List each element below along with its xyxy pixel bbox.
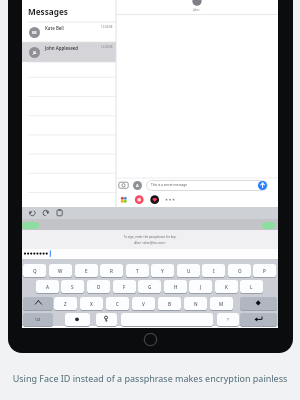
button[interactable]: [23, 297, 53, 310]
button[interactable]: W: [49, 264, 72, 277]
button[interactable]: U: [177, 264, 200, 277]
button[interactable]: F: [113, 280, 136, 293]
staticText: Messages: [28, 6, 68, 17]
staticText: H: [174, 284, 178, 290]
staticText: V: [142, 301, 145, 307]
button[interactable]: E: [75, 264, 98, 277]
staticText: This is a secret message: [151, 183, 187, 187]
staticText: Z: [64, 301, 67, 307]
staticText: John ›: [193, 8, 201, 12]
staticText: A: [46, 284, 50, 290]
button[interactable]: John ›: [182, 7, 212, 12]
staticText: John Appleseed: [45, 45, 79, 51]
button[interactable]: I: [202, 264, 225, 277]
staticText: L: [250, 284, 253, 290]
staticText: JA: [33, 50, 37, 55]
staticText: M: [219, 301, 224, 307]
button[interactable]: [240, 297, 277, 310]
button[interactable]: [258, 181, 267, 190]
staticText: U: [187, 268, 191, 274]
staticText: O: [238, 268, 242, 274]
staticText: X: [90, 301, 93, 307]
button[interactable]: A: [36, 280, 59, 293]
button[interactable]: O: [228, 264, 251, 277]
button[interactable]: B: [158, 297, 181, 310]
button[interactable]: Z: [54, 297, 77, 310]
staticText: R: [110, 268, 113, 274]
button[interactable]: Y: [151, 264, 174, 277]
button[interactable]: [262, 222, 275, 229]
staticText: Using Face ID instead of a passphrase ma…: [0, 372, 300, 384]
button[interactable]: D: [87, 280, 110, 293]
staticText: A: [136, 183, 139, 188]
button[interactable]: R: [100, 264, 123, 277]
button[interactable]: G: [138, 280, 161, 293]
staticText: 123: [35, 318, 41, 322]
button[interactable]: J: [189, 280, 212, 293]
button[interactable]: P: [253, 264, 276, 277]
staticText: P: [263, 268, 266, 274]
button[interactable]: 123: [23, 313, 53, 326]
button[interactable]: C: [106, 297, 129, 310]
staticText: D: [97, 284, 101, 290]
staticText: W: [58, 268, 63, 274]
button[interactable]: [96, 313, 117, 326]
button[interactable]: ?: [217, 313, 239, 326]
button[interactable]: T: [126, 264, 149, 277]
staticText: I: [213, 268, 215, 274]
staticText: Q: [33, 268, 37, 274]
button[interactable]: K: [215, 280, 238, 293]
staticText: Y: [161, 268, 164, 274]
staticText: F: [123, 284, 126, 290]
staticText: ?: [227, 317, 229, 322]
staticText: K: [225, 284, 228, 290]
staticText: To sign, enter the passphrase for key:: [22, 235, 278, 239]
button[interactable]: X: [80, 297, 103, 310]
button[interactable]: KB: [22, 22, 116, 42]
staticText: 12:34:08: [101, 45, 113, 49]
button[interactable]: This is a secret message: [146, 180, 268, 191]
button[interactable]: N: [184, 297, 207, 310]
staticText: J: [200, 284, 202, 290]
button[interactable]: H: [164, 280, 187, 293]
staticText: E: [85, 268, 88, 274]
staticText: T: [136, 268, 139, 274]
staticText: 12:34:08: [101, 25, 113, 29]
button[interactable]: L: [240, 280, 263, 293]
staticText: S: [71, 284, 74, 290]
staticText: B: [168, 301, 172, 307]
staticText: Kate Bell: [45, 25, 64, 31]
button[interactable]: JA: [22, 42, 116, 62]
button[interactable]: [65, 313, 90, 326]
button[interactable]: V: [132, 297, 155, 310]
button[interactable]: [240, 313, 277, 326]
button[interactable]: Q: [23, 264, 46, 277]
button[interactable]: A: [133, 181, 142, 190]
staticText: G: [148, 284, 152, 290]
button[interactable]: M: [210, 297, 233, 310]
staticText: N: [194, 301, 198, 307]
button[interactable]: S: [61, 280, 84, 293]
button[interactable]: [121, 313, 213, 326]
staticText: C: [116, 301, 119, 307]
staticText: Alice <alice@foo.com>: [22, 241, 278, 245]
button[interactable]: [22, 222, 39, 229]
staticText: KB: [32, 30, 37, 35]
